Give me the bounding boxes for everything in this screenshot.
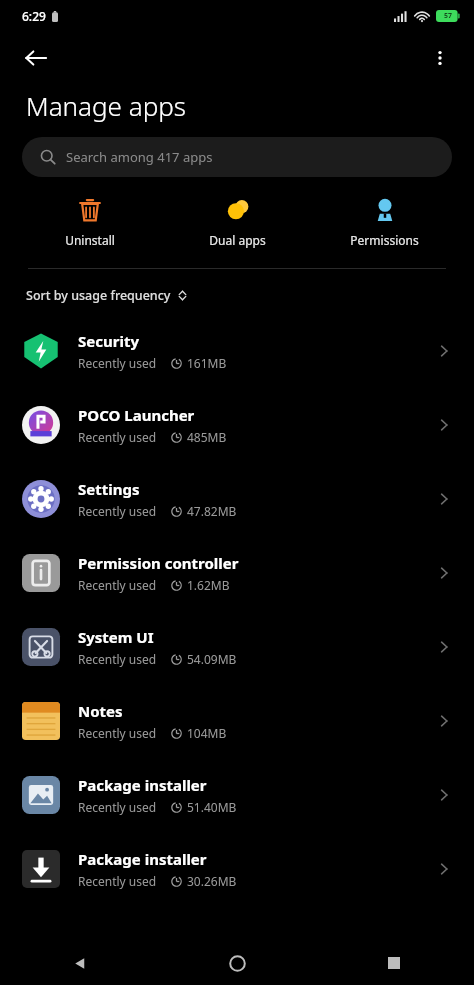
button[interactable]: Package installer — [0, 832, 474, 906]
button[interactable]: Permissions — [311, 191, 458, 254]
staticText: Notes — [78, 701, 123, 721]
staticText: Recently used — [78, 577, 157, 593]
staticText: 485MB — [187, 429, 227, 445]
staticText: 57 — [444, 11, 453, 21]
staticText: Recently used — [78, 355, 157, 371]
button[interactable]: POCO Launcher — [0, 388, 474, 462]
staticText: 6:29 — [22, 8, 46, 24]
staticText: 51.40MB — [187, 799, 237, 815]
staticText: Recently used — [78, 873, 157, 889]
staticText: Recently used — [78, 799, 157, 815]
staticText: Security — [78, 331, 139, 351]
staticText: Search among 417 apps — [66, 148, 213, 166]
button[interactable]: Uninstall — [16, 191, 164, 254]
staticText: 54.09MB — [187, 651, 237, 667]
staticText: Permissions — [350, 232, 419, 248]
staticText: System UI — [78, 627, 154, 647]
button[interactable]: Sort by usage frequency — [26, 287, 188, 304]
staticText: 30.26MB — [187, 873, 237, 889]
button[interactable]: More options — [420, 38, 460, 78]
button[interactable]: System UI — [0, 610, 474, 684]
staticText: 47.82MB — [187, 503, 237, 519]
staticText: Package installer — [78, 775, 207, 795]
button[interactable]: Security — [0, 314, 474, 388]
staticText: Settings — [78, 479, 140, 499]
staticText: Manage apps — [26, 88, 186, 123]
button[interactable]: Recent apps — [376, 945, 412, 981]
staticText: 104MB — [187, 725, 227, 741]
staticText: Recently used — [78, 725, 157, 741]
button[interactable]: Back — [62, 945, 98, 981]
staticText: Sort by usage frequency — [26, 287, 171, 304]
staticText: 1.62MB — [187, 577, 230, 593]
staticText: POCO Launcher — [78, 405, 195, 425]
staticText: Recently used — [78, 503, 157, 519]
button[interactable]: Settings — [0, 462, 474, 536]
staticText: Recently used — [78, 429, 157, 445]
button[interactable]: Package installer — [0, 758, 474, 832]
staticText: Dual apps — [209, 232, 266, 248]
button[interactable]: Back — [14, 36, 58, 80]
staticText: Permission controller — [78, 553, 239, 573]
button[interactable]: Search among 417 apps — [22, 137, 452, 177]
button[interactable]: Permission controller — [0, 536, 474, 610]
button[interactable]: Dual apps — [164, 191, 311, 254]
staticText: Package installer — [78, 849, 207, 869]
staticText: Recently used — [78, 651, 157, 667]
staticText: Uninstall — [65, 232, 115, 248]
staticText: 161MB — [187, 355, 227, 371]
button[interactable]: Home — [219, 945, 255, 981]
button[interactable]: Notes — [0, 684, 474, 758]
